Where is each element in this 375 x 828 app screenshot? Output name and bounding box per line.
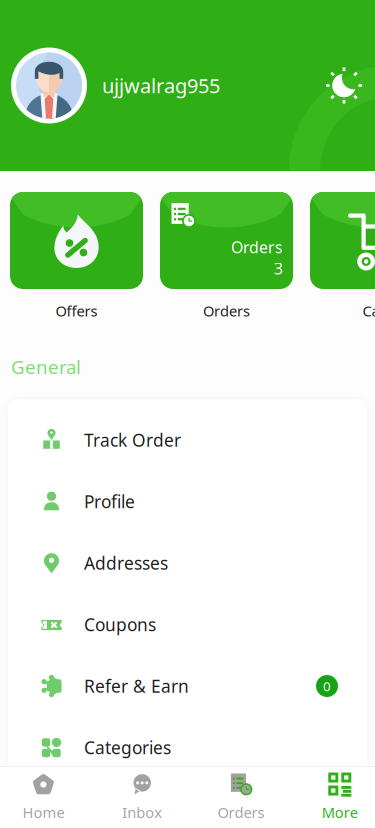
- staticText: Orders: [203, 301, 250, 320]
- button[interactable]: Refer & Earn: [8, 655, 367, 717]
- button[interactable]: Orders: [160, 192, 293, 320]
- button[interactable]: Profile: [8, 471, 367, 532]
- button[interactable]: Coupons: [8, 594, 367, 655]
- button[interactable]: Orders: [192, 766, 290, 828]
- staticText: Orders: [217, 802, 264, 822]
- button[interactable]: Offers: [10, 192, 143, 320]
- button[interactable]: Toggle dark mode: [322, 63, 366, 107]
- staticText: Refer & Earn: [84, 674, 189, 697]
- staticText: 3: [274, 258, 283, 279]
- staticText: Addresses: [84, 551, 168, 574]
- button[interactable]: Categories: [8, 717, 367, 778]
- staticText: Profile: [84, 490, 135, 513]
- staticText: Categories: [84, 736, 171, 759]
- button[interactable]: Cart: [310, 192, 375, 320]
- staticText: More: [322, 802, 358, 822]
- staticText: ujjwalrag955: [102, 72, 220, 99]
- button[interactable]: Home: [0, 766, 93, 828]
- staticText: Offers: [55, 301, 97, 320]
- staticText: 0: [323, 677, 331, 695]
- staticText: Coupons: [84, 613, 156, 636]
- button[interactable]: More: [290, 766, 375, 828]
- button[interactable]: Track Order: [8, 409, 367, 471]
- staticText: Cart: [362, 301, 375, 320]
- staticText: Orders: [231, 236, 283, 258]
- button[interactable]: Addresses: [8, 532, 367, 594]
- staticText: General: [11, 354, 81, 379]
- staticText: Inbox: [122, 802, 162, 822]
- staticText: Track Order: [84, 428, 181, 451]
- button[interactable]: Inbox: [93, 766, 192, 828]
- staticText: Home: [22, 802, 64, 822]
